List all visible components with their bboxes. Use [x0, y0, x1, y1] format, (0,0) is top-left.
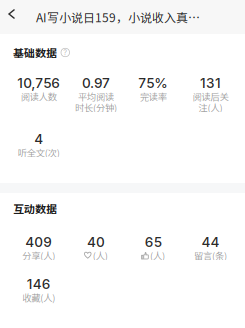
- staticText: 注(人): [198, 101, 222, 114]
- staticText: 互动数据: [13, 201, 57, 216]
- staticText: (人): [150, 249, 165, 262]
- staticText: 65: [145, 234, 162, 250]
- staticText: 4: [34, 131, 43, 147]
- staticText: 阅读后关: [192, 90, 228, 103]
- staticText: 0.97: [82, 75, 110, 91]
- button[interactable]: 返回: [0, 0, 26, 34]
- staticText: 10,756: [17, 75, 60, 91]
- staticText: 收藏(人): [22, 291, 55, 304]
- staticText: 基础数据: [13, 45, 57, 60]
- staticText: 听全文(次): [18, 146, 60, 159]
- staticText: 146: [27, 276, 51, 292]
- staticText: (人): [93, 249, 108, 262]
- staticText: 40: [87, 234, 105, 250]
- button[interactable]: 关于基础数据: [61, 48, 69, 57]
- staticText: AI写小说日159，小说收入真…: [36, 8, 200, 26]
- staticText: 分享(人): [22, 249, 55, 262]
- staticText: 44: [201, 234, 219, 250]
- staticText: 时长(分钟): [75, 101, 117, 114]
- staticText: 留言(条): [194, 249, 227, 262]
- staticText: ?: [63, 48, 67, 57]
- staticText: 完读率: [140, 90, 167, 103]
- staticText: 409: [25, 234, 52, 250]
- staticText: 平均阅读: [78, 90, 114, 103]
- staticText: 阅读人数: [21, 90, 57, 103]
- staticText: 131: [200, 75, 221, 91]
- staticText: 75%: [138, 75, 168, 91]
